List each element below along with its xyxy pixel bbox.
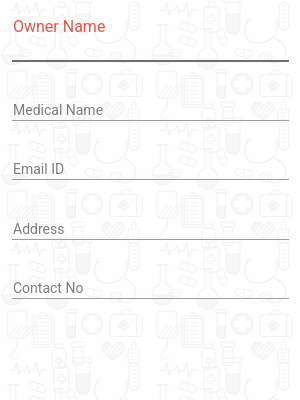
staticText: Owner Name — [13, 17, 106, 36]
button[interactable]: Contact No text field — [12, 251, 289, 301]
staticText: Address — [13, 221, 65, 237]
staticText: Medical Name — [13, 102, 104, 118]
button[interactable]: Medical Name text field — [12, 73, 289, 122]
staticText: Email ID — [13, 161, 65, 177]
staticText: Contact No — [13, 280, 84, 296]
button[interactable]: Address text field — [12, 192, 289, 241]
button[interactable]: Email ID text field — [12, 132, 289, 182]
button[interactable]: Owner Name text field — [12, 12, 289, 63]
